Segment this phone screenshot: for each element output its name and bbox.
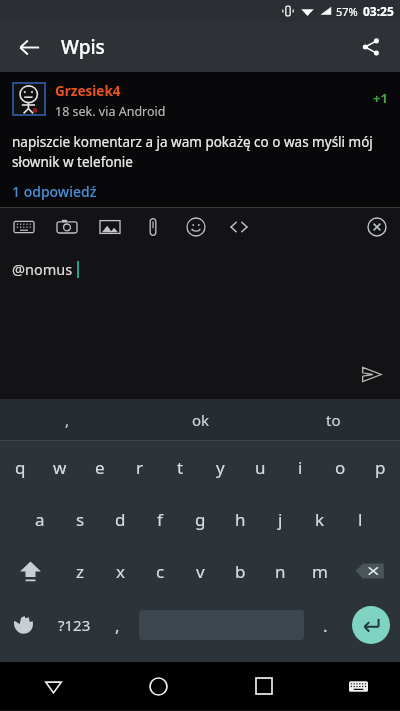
staticText: 18 sek. via Android bbox=[55, 103, 166, 120]
staticText: ?123 bbox=[58, 615, 91, 635]
button[interactable]: l bbox=[340, 493, 380, 545]
button[interactable]: Code bbox=[224, 212, 254, 242]
button[interactable]: r bbox=[120, 441, 160, 493]
button[interactable]: z bbox=[60, 545, 100, 597]
button[interactable]: q bbox=[0, 441, 40, 493]
button[interactable]: j bbox=[260, 493, 300, 545]
button[interactable]: Camera bbox=[52, 212, 82, 242]
staticText: w bbox=[53, 456, 67, 479]
staticText: Wpis bbox=[61, 34, 105, 60]
staticText: g bbox=[195, 508, 206, 531]
staticText: d bbox=[115, 508, 126, 531]
button[interactable]: u bbox=[240, 441, 280, 493]
button[interactable]: m bbox=[300, 545, 340, 597]
staticText: o bbox=[335, 456, 346, 479]
button[interactable]: Grzesiek4 bbox=[0, 72, 400, 207]
button[interactable]: w bbox=[40, 441, 80, 493]
staticText: n bbox=[275, 560, 286, 583]
staticText: q bbox=[15, 456, 26, 479]
staticText: 57% bbox=[336, 4, 358, 19]
button[interactable]: Switch keyboard bbox=[316, 662, 400, 710]
staticText: x bbox=[116, 560, 125, 583]
button[interactable]: Share bbox=[350, 26, 392, 68]
button[interactable]: ok bbox=[134, 399, 267, 440]
staticText: l bbox=[358, 508, 363, 531]
button[interactable]: Home bbox=[106, 662, 211, 710]
staticText: t bbox=[177, 456, 184, 479]
button[interactable]: Back bbox=[0, 662, 106, 710]
button[interactable]: to bbox=[267, 399, 400, 440]
staticText: ok bbox=[192, 410, 210, 430]
button[interactable]: y bbox=[200, 441, 240, 493]
button[interactable]: ?123 bbox=[47, 597, 101, 653]
staticText: z bbox=[76, 560, 84, 583]
button[interactable]: , bbox=[101, 597, 134, 653]
staticText: 1 odpowiedź bbox=[12, 182, 97, 201]
staticText: +1 bbox=[373, 89, 388, 107]
button[interactable]: Voice typing bbox=[0, 597, 47, 653]
button[interactable]: c bbox=[140, 545, 180, 597]
staticText: , bbox=[115, 614, 120, 637]
staticText: c bbox=[156, 560, 165, 583]
staticText: r bbox=[136, 456, 144, 479]
button[interactable]: k bbox=[300, 493, 340, 545]
button[interactable]: Emoji bbox=[181, 212, 211, 242]
button[interactable]: v bbox=[180, 545, 220, 597]
button[interactable]: a bbox=[20, 493, 60, 545]
button[interactable]: Attach file bbox=[138, 212, 168, 242]
staticText: p bbox=[375, 456, 386, 479]
staticText: s bbox=[76, 508, 85, 531]
staticText: . bbox=[323, 614, 328, 637]
staticText: y bbox=[216, 456, 225, 479]
button[interactable]: b bbox=[220, 545, 260, 597]
staticText: , bbox=[65, 410, 70, 430]
button[interactable]: t bbox=[160, 441, 200, 493]
button[interactable]: Backspace bbox=[340, 545, 400, 597]
button[interactable]: f bbox=[140, 493, 180, 545]
staticText: h bbox=[235, 508, 246, 531]
staticText: to bbox=[326, 410, 341, 430]
button[interactable]: 1 odpowiedź bbox=[12, 182, 97, 201]
staticText: a bbox=[35, 508, 45, 531]
button[interactable]: Gallery bbox=[95, 212, 125, 242]
staticText: f bbox=[157, 508, 163, 531]
button[interactable]: n bbox=[260, 545, 300, 597]
staticText: @nomus bbox=[12, 259, 73, 279]
staticText: u bbox=[255, 456, 266, 479]
button[interactable]: Back bbox=[7, 25, 51, 69]
button[interactable]: Clear bbox=[362, 212, 392, 242]
staticText: i bbox=[298, 456, 303, 479]
button[interactable]: Keyboard bbox=[9, 212, 39, 242]
staticText: v bbox=[196, 560, 205, 583]
button[interactable]: Recent apps bbox=[211, 662, 316, 710]
button[interactable]: Send bbox=[355, 358, 387, 390]
button[interactable]: . bbox=[309, 597, 342, 653]
button[interactable]: , bbox=[0, 399, 134, 440]
staticText: b bbox=[235, 560, 246, 583]
staticText: 03:25 bbox=[363, 3, 394, 19]
staticText: Grzesiek4 bbox=[55, 82, 121, 100]
button[interactable]: s bbox=[60, 493, 100, 545]
staticText: j bbox=[278, 508, 283, 531]
staticText: m bbox=[312, 560, 328, 583]
button[interactable]: h bbox=[220, 493, 260, 545]
button[interactable]: g bbox=[180, 493, 220, 545]
staticText: e bbox=[95, 456, 105, 479]
button[interactable]: i bbox=[280, 441, 320, 493]
button[interactable]: Enter bbox=[342, 597, 400, 653]
staticText: k bbox=[315, 508, 325, 531]
button[interactable]: Shift bbox=[0, 545, 60, 597]
button[interactable]: p bbox=[360, 441, 400, 493]
staticText: napiszcie komentarz a ja wam pokażę co o… bbox=[12, 133, 386, 171]
button[interactable]: o bbox=[320, 441, 360, 493]
button[interactable]: x bbox=[100, 545, 140, 597]
button[interactable]: d bbox=[100, 493, 140, 545]
button[interactable]: e bbox=[80, 441, 120, 493]
